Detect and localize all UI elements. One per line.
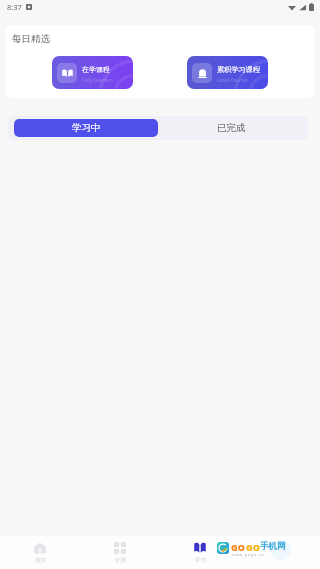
staticText: 在学课程 — [82, 65, 110, 74]
staticText: 学习中 — [72, 122, 101, 134]
staticText: GO — [246, 541, 260, 553]
staticText: 每日精选 — [12, 33, 50, 45]
staticText: 手机网 — [260, 541, 286, 552]
staticText: 首页 — [35, 557, 46, 564]
staticText: w w w . g o g o . c n — [232, 552, 264, 557]
staticText: 分类 — [115, 557, 126, 564]
button[interactable]: Home — [0, 536, 80, 569]
staticText: Daily Selection — [82, 77, 113, 83]
staticText: 8:37 — [7, 2, 22, 12]
staticText: 累积学习课程 — [217, 65, 261, 74]
button[interactable]: 学习中 — [14, 119, 158, 137]
staticText: 我的 — [275, 557, 286, 564]
button[interactable]: Profile — [240, 536, 320, 569]
button[interactable]: Categories — [80, 536, 160, 569]
button[interactable]: Study — [160, 536, 240, 569]
button[interactable]: 在学课程 — [52, 56, 133, 89]
button[interactable]: 累积学习课程 — [187, 56, 268, 89]
staticText: 学习 — [195, 557, 206, 564]
staticText: 已完成 — [217, 122, 246, 134]
button[interactable]: 已完成 — [159, 119, 303, 137]
staticText: GO — [231, 541, 245, 553]
staticText: Listed Courses — [217, 77, 248, 83]
